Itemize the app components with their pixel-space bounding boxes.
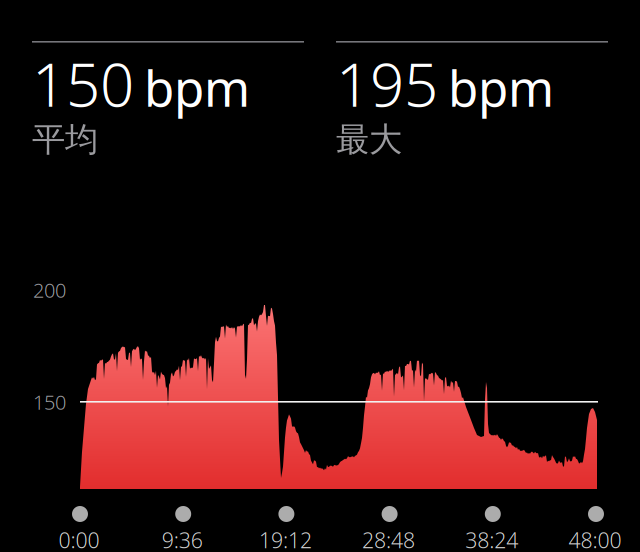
button[interactable]: Heart rate chart — [80, 304, 597, 489]
staticText: 0:00 — [58, 526, 99, 552]
staticText: 19:12 — [259, 526, 312, 552]
staticText: bpm — [448, 55, 554, 120]
staticText: 150 — [33, 389, 66, 415]
staticText: 平均 — [32, 119, 98, 160]
button[interactable]: 150 — [32, 41, 304, 164]
button[interactable]: 195 — [336, 41, 608, 164]
staticText: 28:48 — [362, 526, 415, 552]
staticText: 200 — [33, 277, 66, 303]
staticText: 150 — [32, 44, 134, 123]
staticText: 38:24 — [465, 526, 518, 552]
staticText: bpm — [144, 55, 250, 120]
staticText: 最大 — [336, 119, 402, 160]
staticText: 48:00 — [568, 526, 621, 552]
staticText: 195 — [336, 44, 438, 123]
staticText: 9:36 — [162, 526, 203, 552]
